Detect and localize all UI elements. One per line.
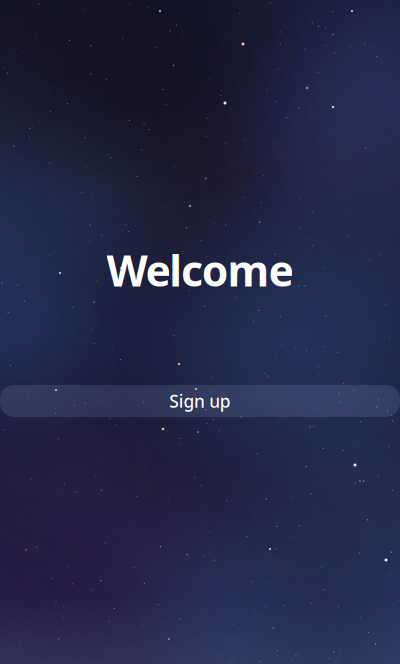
staticText: Sign up (169, 389, 231, 412)
staticText: Welcome (107, 242, 293, 298)
button[interactable]: Sign up (0, 385, 400, 417)
